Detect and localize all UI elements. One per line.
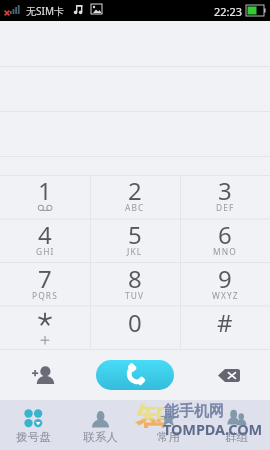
button[interactable]: 常用 xyxy=(134,400,202,450)
staticText: ABC xyxy=(125,202,145,213)
staticText: 3 xyxy=(218,174,232,207)
button[interactable] xyxy=(0,307,90,349)
button[interactable]: 群组 xyxy=(202,400,270,450)
button[interactable]: 1 xyxy=(0,175,90,219)
button[interactable]: 5 xyxy=(90,219,180,263)
staticText: 4 xyxy=(38,218,52,251)
staticText: 5 xyxy=(128,218,142,251)
button[interactable]: 拨号盘 xyxy=(0,400,67,450)
button[interactable]: 9 xyxy=(180,263,270,307)
staticText: WXYZ xyxy=(212,290,239,301)
staticText: 6 xyxy=(218,218,232,251)
staticText: 能手机网 xyxy=(164,402,224,421)
staticText: # xyxy=(217,306,233,339)
button[interactable]: 联系人 xyxy=(67,400,134,450)
button[interactable]: 6 xyxy=(180,219,270,263)
staticText: DEF xyxy=(216,202,235,213)
staticText: TOMPDA.COM xyxy=(163,419,263,439)
button[interactable]: 4 xyxy=(0,219,90,263)
staticText: MNO xyxy=(213,246,237,257)
staticText: 0 xyxy=(128,306,142,339)
staticText: GHI xyxy=(36,246,55,257)
staticText: 1 xyxy=(38,174,52,207)
button[interactable]: Add contact xyxy=(12,355,60,395)
staticText: TUV xyxy=(125,290,145,301)
button[interactable]: 0 xyxy=(90,307,180,349)
staticText: 智 xyxy=(135,399,164,428)
staticText: 9 xyxy=(218,262,232,295)
staticText: 2 xyxy=(128,174,142,207)
staticText: 拨号盘 xyxy=(16,430,51,444)
staticText: 无SIM卡 xyxy=(26,4,64,18)
staticText: 群组 xyxy=(225,430,248,444)
button[interactable]: # xyxy=(180,307,270,349)
staticText: PQRS xyxy=(32,290,58,301)
button[interactable]: 7 xyxy=(0,263,90,307)
staticText: 联系人 xyxy=(83,430,118,444)
button[interactable]: Call xyxy=(96,360,174,390)
staticText: 常用 xyxy=(157,430,180,444)
button[interactable]: 2 xyxy=(90,175,180,219)
button[interactable]: 8 xyxy=(90,263,180,307)
staticText: 22:23 xyxy=(214,4,243,19)
staticText: 7 xyxy=(38,262,52,295)
button[interactable]: 3 xyxy=(180,175,270,219)
staticText: JKL xyxy=(127,246,143,257)
button[interactable]: Delete xyxy=(212,355,256,395)
staticText: 8 xyxy=(128,262,142,295)
